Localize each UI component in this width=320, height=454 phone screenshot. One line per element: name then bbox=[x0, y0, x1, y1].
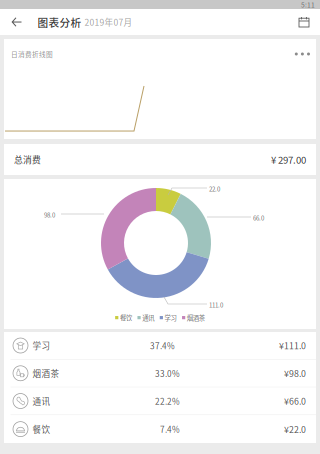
button[interactable]: 烟酒茶 bbox=[4, 360, 316, 388]
staticText: 37.4% bbox=[150, 339, 175, 351]
button[interactable]: 通讯 bbox=[4, 387, 316, 415]
button[interactable]: 选择日期 bbox=[292, 9, 316, 35]
staticText: 2019年07月 bbox=[84, 16, 132, 28]
staticText: 111.0 bbox=[209, 300, 223, 309]
staticText: 总消费 bbox=[14, 153, 41, 166]
button[interactable]: 餐饮 bbox=[4, 415, 316, 443]
staticText: 通讯 bbox=[142, 313, 154, 322]
staticText: 66.0 bbox=[253, 213, 264, 222]
staticText: 烟酒茶 bbox=[32, 367, 59, 379]
staticText: 22.2% bbox=[155, 395, 180, 407]
staticText: 烟酒茶 bbox=[187, 313, 205, 322]
button[interactable]: 返回 bbox=[0, 9, 33, 35]
staticText: ¥98.0 bbox=[284, 367, 306, 380]
staticText: ¥ 297.00 bbox=[271, 152, 306, 166]
staticText: 33.0% bbox=[155, 367, 180, 379]
staticText: 学习 bbox=[165, 313, 177, 322]
staticText: 22.0 bbox=[209, 184, 220, 193]
staticText: 7.4% bbox=[160, 423, 180, 435]
staticText: 通讯 bbox=[32, 395, 50, 407]
staticText: 餐饮 bbox=[32, 423, 50, 435]
staticText: 图表分析 bbox=[37, 14, 81, 30]
staticText: 学习 bbox=[32, 339, 50, 352]
button[interactable]: 更多 bbox=[288, 46, 310, 62]
button[interactable]: 学习 bbox=[4, 332, 316, 360]
staticText: ¥111.0 bbox=[279, 339, 306, 352]
staticText: 餐饮 bbox=[120, 313, 132, 322]
staticText: ¥22.0 bbox=[284, 423, 306, 435]
staticText: ¥66.0 bbox=[284, 395, 306, 407]
staticText: 98.0 bbox=[44, 210, 55, 219]
staticText: 5:11 bbox=[301, 0, 315, 9]
staticText: 日消费折线图 bbox=[11, 49, 53, 59]
